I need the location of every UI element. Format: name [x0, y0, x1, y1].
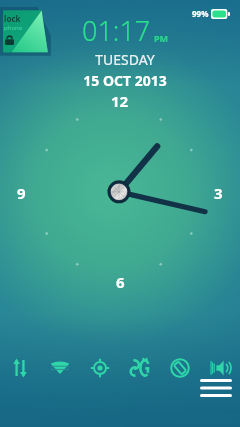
staticText: 01:17	[82, 12, 151, 49]
button[interactable]: 12	[0, 85, 240, 300]
button[interactable]: GPS	[80, 352, 120, 384]
button[interactable]: 3G network	[120, 352, 160, 384]
staticText: phone	[4, 24, 23, 32]
button[interactable]: Lock phone	[0, 0, 52, 58]
staticText: lock	[4, 13, 21, 24]
staticText: TUESDAY	[95, 50, 155, 69]
staticText: 15 OCT 2013	[83, 71, 167, 90]
staticText: 99%	[192, 8, 209, 19]
staticText: PM	[154, 32, 169, 44]
button[interactable]: Auto rotate	[160, 352, 200, 384]
button[interactable]: Menu	[196, 374, 236, 402]
staticText: 6	[116, 272, 125, 292]
staticText: 9	[17, 183, 26, 203]
staticText: 12	[111, 91, 129, 111]
button[interactable]: Wi-Fi	[40, 352, 80, 384]
staticText: 3	[214, 183, 223, 203]
button[interactable]: Battery 99 percent	[192, 8, 230, 19]
button[interactable]: 01:17	[60, 12, 190, 90]
button[interactable]: Sound	[200, 352, 240, 384]
button[interactable]: Mobile data	[0, 352, 40, 384]
